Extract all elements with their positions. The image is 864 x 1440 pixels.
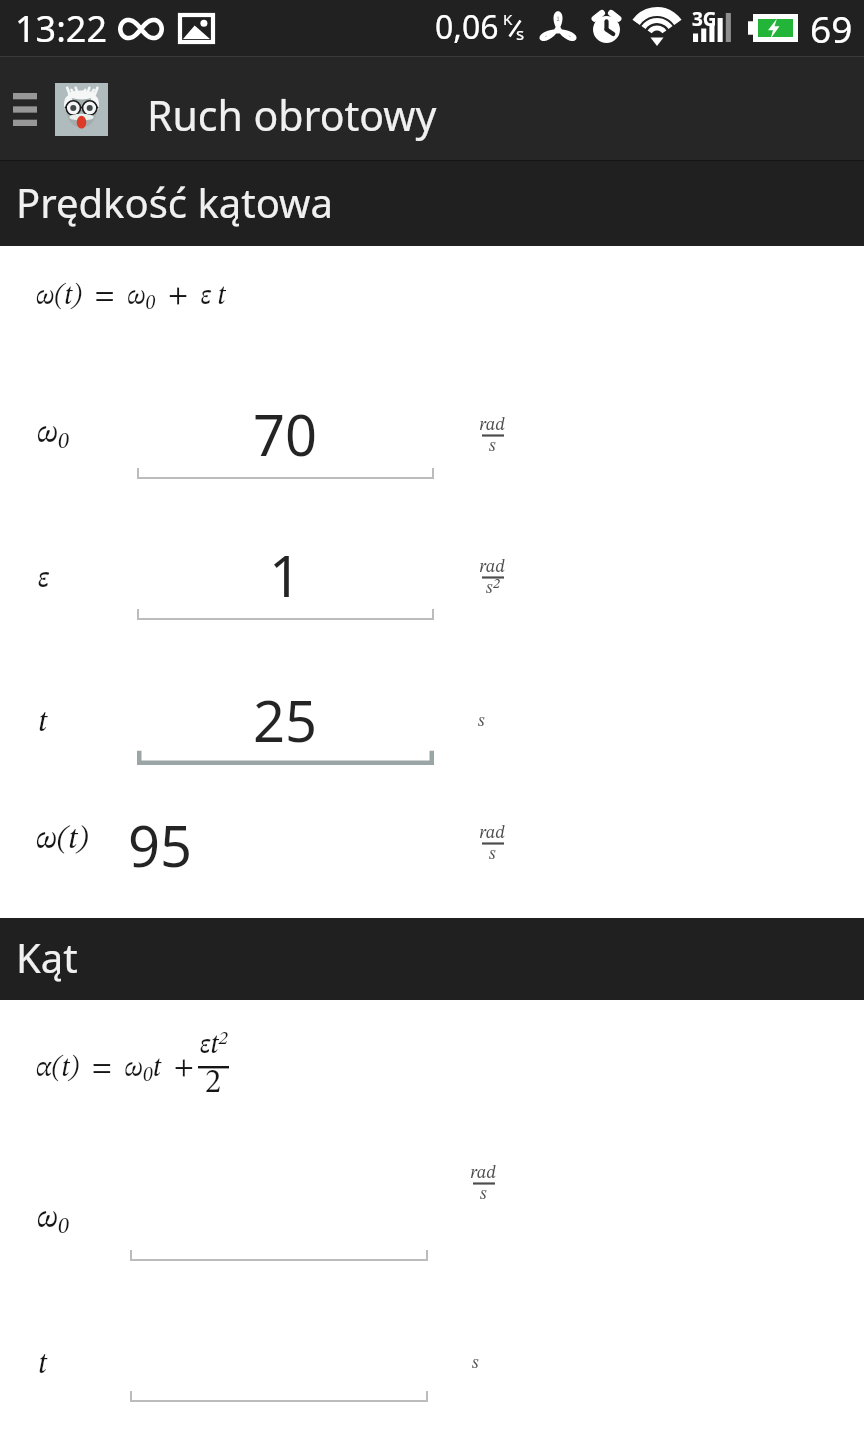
staticText: s² [486,579,500,597]
staticText: 95 [128,807,193,883]
staticText: t [38,707,48,738]
staticText: Kąt [16,930,78,984]
staticText: 2 [205,1068,221,1100]
staticText: 70 [253,396,318,472]
staticText: K [503,9,513,29]
staticText: α(t) = ω0t + [36,1055,194,1086]
button[interactable]: 1 [137,533,434,620]
staticText: rad [470,1164,497,1182]
button[interactable]: Menu [1,85,48,133]
staticText: s [489,437,496,455]
staticText: s [480,1185,487,1203]
button[interactable]: 70 [137,392,434,479]
staticText: 25 [253,682,318,758]
staticText: 0,06 [435,5,499,49]
staticText: εt2 [200,1030,228,1060]
staticText: rad [479,416,506,434]
button[interactable]: 25 [137,678,434,765]
staticText: rad [479,824,506,842]
staticText: Ruch obrotowy [147,87,437,143]
staticText: s [516,22,525,45]
staticText: Prędkość kątowa [16,175,333,229]
button[interactable] [130,1330,428,1402]
staticText: 3G [692,6,717,32]
staticText: 1 [269,537,302,613]
staticText: ω0 [37,418,70,453]
staticText: s [489,845,496,863]
staticText: 13:22 [15,4,108,53]
button[interactable]: App icon [55,83,108,136]
staticText: ω0 [37,1203,70,1238]
staticText: rad [479,558,506,576]
staticText: ε [38,564,49,594]
staticText: ω(t) [36,824,89,856]
staticText: ω(t) = ω0 + ε t [36,283,226,314]
staticText: t [38,1350,47,1380]
staticText: s [478,712,485,730]
staticText: s [472,1354,479,1372]
button[interactable] [130,1189,428,1261]
staticText: 69 [810,3,853,53]
